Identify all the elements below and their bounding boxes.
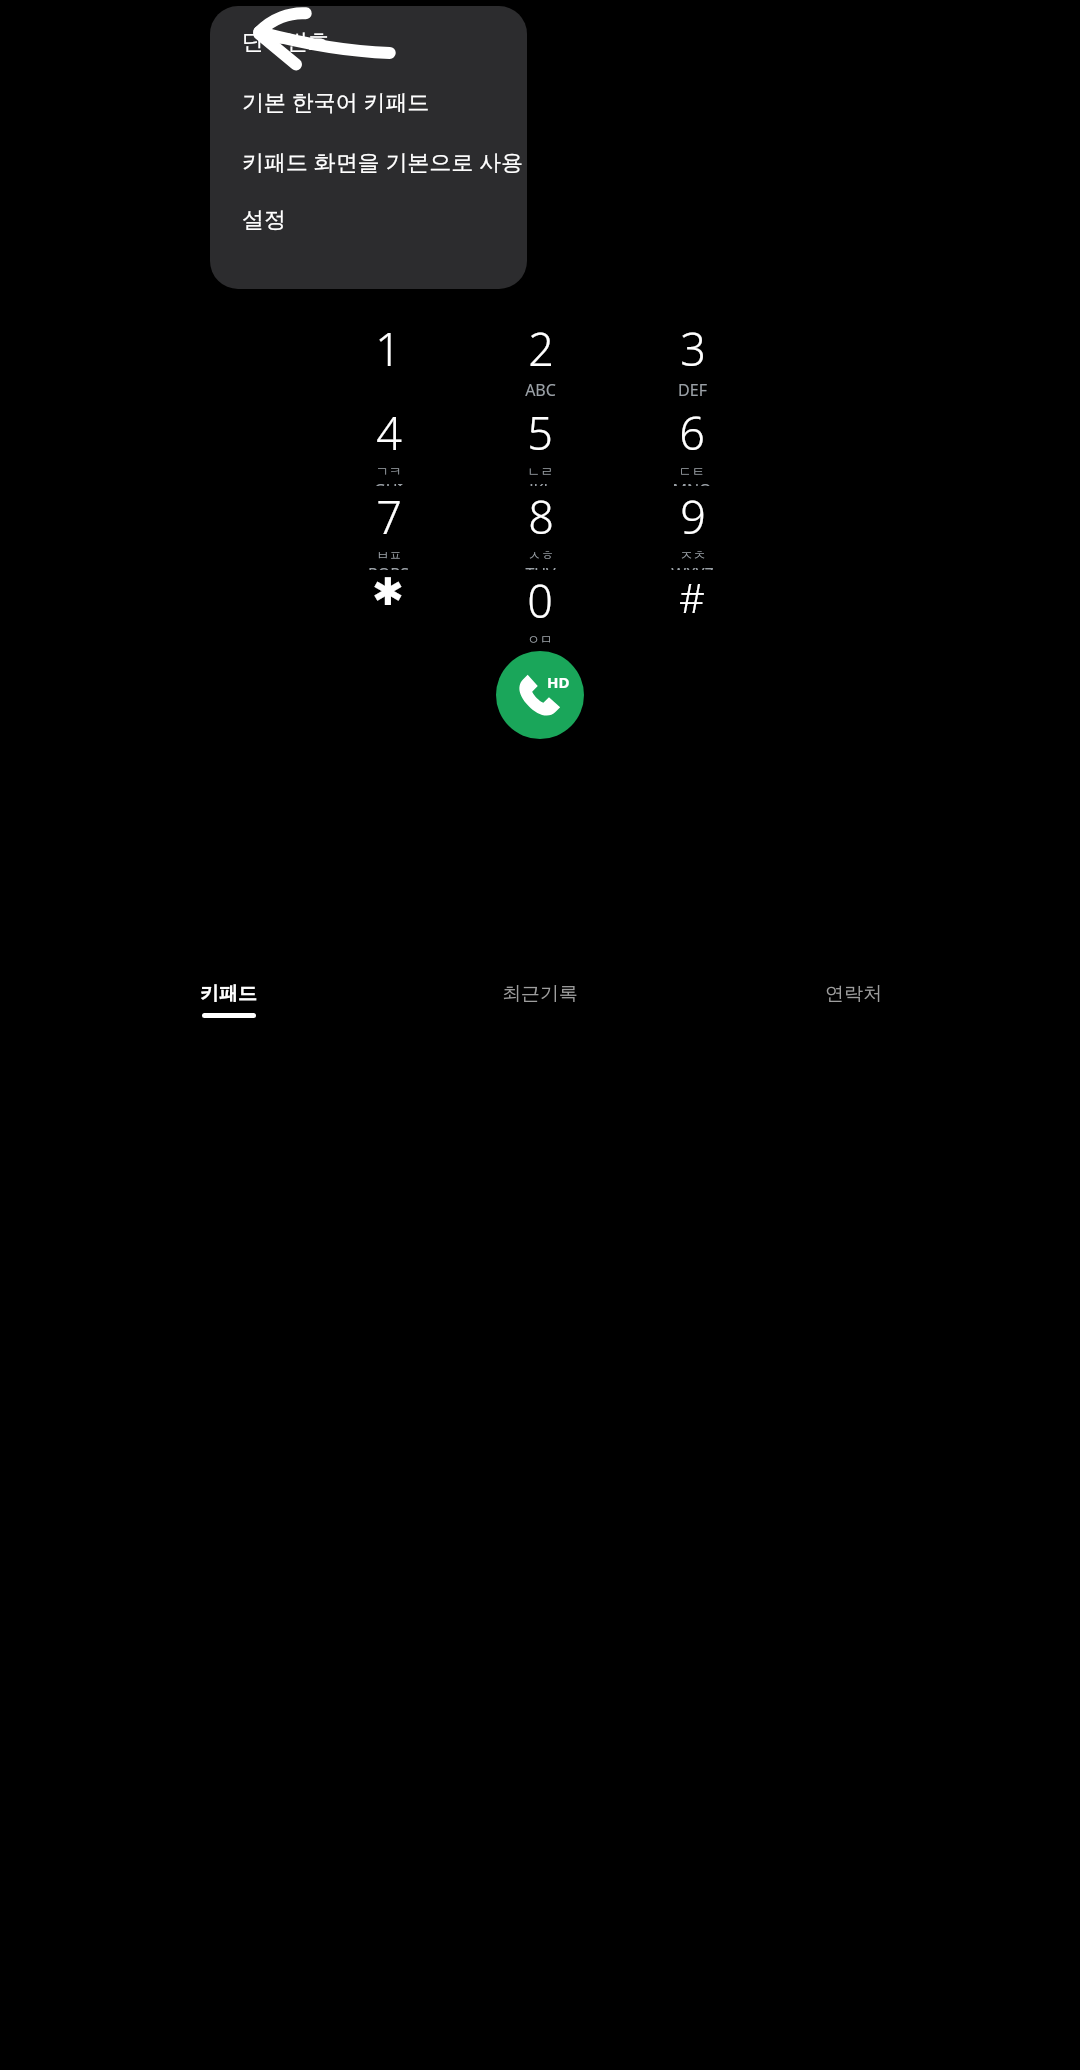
other: Arrow annotation [242, 10, 392, 65]
button[interactable]: 키패드 [143, 982, 313, 1034]
staticText: 8 [528, 486, 554, 547]
staticText: WXYZ [671, 563, 714, 570]
staticText: + [537, 647, 544, 654]
button[interactable]: 9 [616, 486, 768, 570]
button[interactable]: 단축번호 [210, 20, 527, 64]
staticText: 기본 한국어 키패드 [242, 86, 430, 116]
staticText: 1 [375, 318, 401, 379]
staticText: 3 [680, 318, 706, 379]
staticText: 4 [376, 402, 402, 463]
staticText: ㄴㄹ [527, 463, 553, 479]
staticText: 키패드 화면을 기본으로 사용 [242, 146, 524, 176]
staticText: ABC [525, 379, 556, 401]
staticText: PQRS [368, 563, 409, 570]
button[interactable]: Call [496, 651, 584, 739]
button[interactable]: 5 [464, 402, 616, 486]
button[interactable]: 2 [464, 318, 616, 402]
staticText: ㅂㅍ [376, 547, 402, 563]
button[interactable]: ✱ [312, 570, 464, 654]
staticText: # [679, 570, 705, 624]
staticText: 최근기록 [502, 982, 578, 1006]
button[interactable]: # [616, 570, 768, 654]
button[interactable]: 3 [616, 318, 768, 402]
button[interactable]: 최근기록 [455, 982, 625, 1034]
button[interactable]: 7 [312, 486, 464, 570]
staticText: ㄷㅌ [679, 463, 705, 479]
staticText: TUV [525, 563, 556, 570]
button[interactable]: 키패드 화면을 기본으로 사용 [210, 124, 527, 184]
staticText: 연락처 [825, 982, 882, 1006]
button[interactable]: 기본 한국어 키패드 [210, 64, 527, 124]
staticText: JKL [529, 479, 552, 486]
staticText: 단축번호 [242, 28, 330, 56]
staticText: ㄱㅋ [376, 463, 402, 479]
staticText: 6 [679, 402, 705, 463]
staticText: 5 [527, 402, 553, 463]
button[interactable]: 0 [464, 570, 616, 654]
button[interactable]: 설정 [210, 184, 527, 242]
button[interactable]: 6 [616, 402, 768, 486]
button[interactable]: 8 [464, 486, 616, 570]
staticText: ㅇㅁ [527, 631, 553, 647]
staticText: ㅅㅎ [528, 547, 554, 563]
staticText: GHI [374, 479, 403, 486]
staticText: 9 [680, 486, 706, 547]
staticText: DEF [678, 379, 707, 401]
staticText: 7 [376, 486, 402, 547]
staticText: 0 [527, 570, 553, 631]
staticText: ✱ [372, 570, 404, 614]
staticText: 설정 [242, 206, 286, 234]
staticText: 2 [528, 318, 554, 379]
button[interactable]: 1 [312, 318, 464, 402]
button[interactable]: 4 [312, 402, 464, 486]
staticText: 키패드 [200, 982, 257, 1006]
staticText: ㅈㅊ [680, 547, 706, 563]
staticText: MNO [672, 479, 712, 486]
staticText: HD [547, 672, 570, 692]
button[interactable]: 연락처 [768, 982, 938, 1034]
